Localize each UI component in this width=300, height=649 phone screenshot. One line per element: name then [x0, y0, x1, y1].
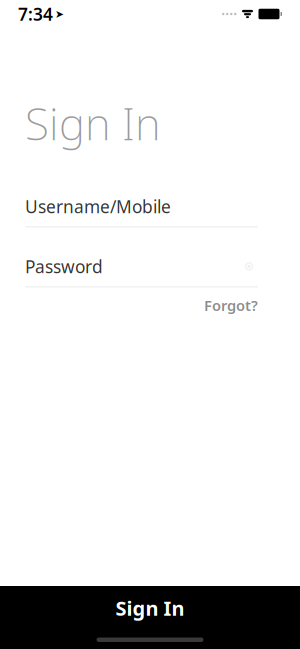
staticText: Username/Mobile — [25, 195, 171, 218]
staticText: 7:34 — [18, 2, 53, 25]
staticText: Password — [25, 255, 103, 278]
button[interactable]: Show password — [240, 257, 258, 275]
button[interactable]: Forgot? — [25, 295, 258, 315]
button[interactable]: Sign In — [0, 586, 300, 630]
staticText: ➤ — [55, 8, 64, 20]
staticText: Sign In — [115, 595, 184, 621]
staticText: Sign In — [25, 94, 161, 152]
staticText: Forgot? — [204, 296, 258, 315]
